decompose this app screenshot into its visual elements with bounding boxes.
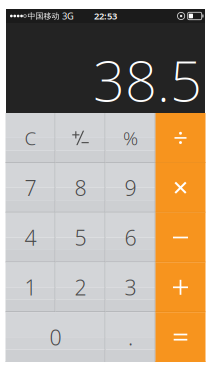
- button[interactable]: [155, 163, 205, 213]
- button[interactable]: 4: [5, 213, 55, 262]
- button[interactable]: 0: [5, 312, 105, 362]
- staticText: 8: [74, 173, 86, 202]
- staticText: 9: [124, 173, 136, 202]
- button[interactable]: %: [105, 113, 155, 163]
- button[interactable]: C: [5, 113, 55, 163]
- button[interactable]: .: [105, 312, 155, 362]
- button[interactable]: [155, 262, 205, 312]
- staticText: .: [128, 323, 133, 351]
- button[interactable]: 1: [5, 262, 55, 312]
- staticText: 6: [124, 223, 136, 252]
- button[interactable]: 2: [55, 262, 105, 312]
- staticText: 38.5: [93, 43, 202, 117]
- staticText: %: [123, 125, 138, 150]
- staticText: 7: [24, 173, 36, 202]
- button[interactable]: [155, 312, 205, 362]
- button[interactable]: [155, 213, 205, 262]
- staticText: 3G: [62, 10, 74, 22]
- button[interactable]: [55, 113, 105, 163]
- button[interactable]: 8: [55, 163, 105, 213]
- staticText: 2: [74, 273, 86, 301]
- staticText: 中国移动: [27, 11, 59, 21]
- button[interactable]: 5: [55, 213, 105, 262]
- staticText: 22:53: [94, 10, 117, 22]
- staticText: 1: [24, 273, 36, 301]
- button[interactable]: 7: [5, 163, 55, 213]
- button[interactable]: 6: [105, 213, 155, 262]
- button[interactable]: 3: [105, 262, 155, 312]
- staticText: 0: [49, 323, 61, 351]
- staticText: C: [24, 125, 36, 150]
- button[interactable]: [155, 113, 205, 163]
- staticText: 4: [24, 223, 36, 252]
- staticText: 5: [74, 223, 86, 252]
- staticText: 3: [124, 273, 136, 301]
- button[interactable]: 9: [105, 163, 155, 213]
